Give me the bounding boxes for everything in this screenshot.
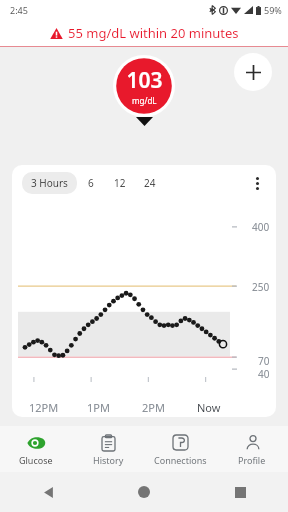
button[interactable]: 3 Hours — [22, 172, 77, 194]
button[interactable]: Connections — [144, 426, 216, 472]
button[interactable]: 103 — [113, 55, 175, 126]
button[interactable]: Profile — [216, 426, 288, 472]
button[interactable]: Home — [96, 472, 192, 512]
staticText: 103 — [126, 66, 163, 95]
staticText: 59% — [264, 4, 282, 16]
button[interactable]: 24 — [135, 171, 165, 195]
staticText: Glucose — [19, 454, 53, 466]
staticText: Now — [197, 400, 221, 415]
staticText: mg/dL — [132, 95, 157, 106]
staticText: 250 — [252, 280, 270, 294]
staticText: 2PM — [142, 400, 165, 415]
button[interactable]: Glucose — [0, 426, 72, 472]
button[interactable]: 55 mg/dL within 20 minutes — [0, 20, 288, 46]
staticText: Connections — [154, 454, 207, 466]
staticText: 24 — [144, 176, 156, 190]
staticText: 70 — [258, 354, 270, 368]
staticText: 12PM — [29, 400, 59, 415]
staticText: 12 — [114, 176, 126, 190]
staticText: 55 mg/dL within 20 minutes — [68, 24, 239, 42]
staticText: 3 Hours — [31, 176, 68, 190]
staticText: 40 — [258, 367, 270, 381]
staticText: 2:45 — [10, 4, 28, 16]
staticText: 1PM — [87, 400, 110, 415]
button[interactable]: More options — [244, 170, 270, 196]
button[interactable]: Back — [0, 472, 96, 512]
staticText: Profile — [238, 454, 266, 466]
button[interactable]: Recents — [192, 472, 288, 512]
button[interactable]: 12 — [105, 171, 135, 195]
staticText: 6 — [88, 176, 94, 190]
staticText: History — [93, 454, 124, 466]
button[interactable]: 6 — [77, 171, 105, 195]
button[interactable]: History — [72, 426, 144, 472]
staticText: 400 — [252, 220, 270, 234]
button[interactable]: Add event — [234, 53, 272, 91]
